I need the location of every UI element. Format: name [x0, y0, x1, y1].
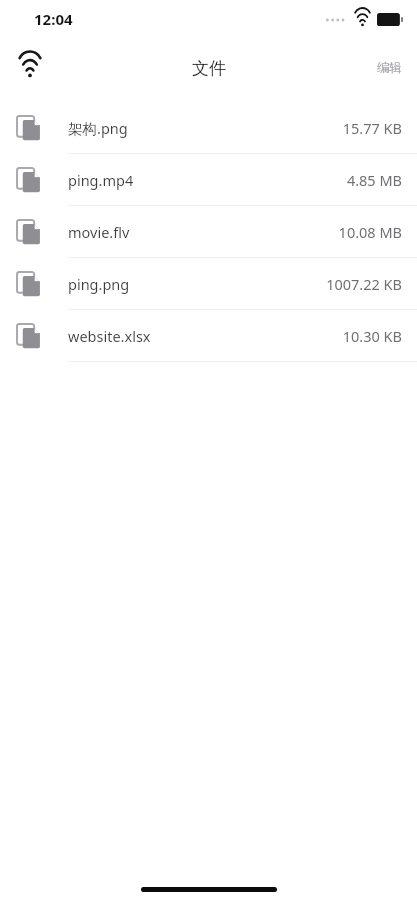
button[interactable]: 编辑 [370, 52, 409, 84]
button[interactable]: website.xlsx [0, 310, 417, 362]
staticText: 编辑 [377, 60, 402, 76]
staticText: 15.77 KB [342, 118, 402, 138]
staticText: 10.30 KB [342, 326, 402, 346]
staticText: 架构.png [68, 118, 128, 138]
staticText: 1007.22 KB [326, 274, 402, 294]
staticText: 4.85 MB [346, 170, 402, 190]
staticText: ping.mp4 [68, 170, 134, 190]
staticText: website.xlsx [68, 326, 151, 346]
button[interactable]: ping.png [0, 258, 417, 310]
button[interactable]: Wi-Fi [8, 46, 52, 90]
staticText: ping.png [68, 274, 130, 294]
staticText: movie.flv [68, 222, 130, 242]
staticText: 12:04 [34, 9, 73, 29]
button[interactable]: ping.mp4 [0, 154, 417, 206]
button[interactable]: movie.flv [0, 206, 417, 258]
staticText: 文件 [192, 58, 226, 79]
staticText: 10.08 MB [338, 222, 402, 242]
button[interactable]: 架构.png [0, 102, 417, 154]
